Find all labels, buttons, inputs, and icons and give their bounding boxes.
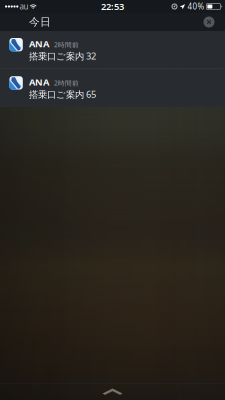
staticText: 今日 [29, 15, 51, 28]
staticText: 搭乗口ご案内 32 [29, 50, 96, 62]
staticText: 40% [187, 1, 204, 12]
staticText: au [19, 1, 28, 12]
button[interactable]: ANA [0, 31, 225, 69]
staticText: ANA [29, 37, 49, 50]
button[interactable]: Clear notifications [203, 16, 214, 27]
staticText: ANA [29, 76, 49, 88]
staticText: 2時間前 [54, 40, 79, 49]
staticText: 搭乗口ご案内 65 [29, 88, 96, 100]
staticText: 22:53 [101, 0, 124, 13]
staticText: 2時間前 [54, 78, 79, 87]
button[interactable]: ANA [0, 69, 225, 107]
